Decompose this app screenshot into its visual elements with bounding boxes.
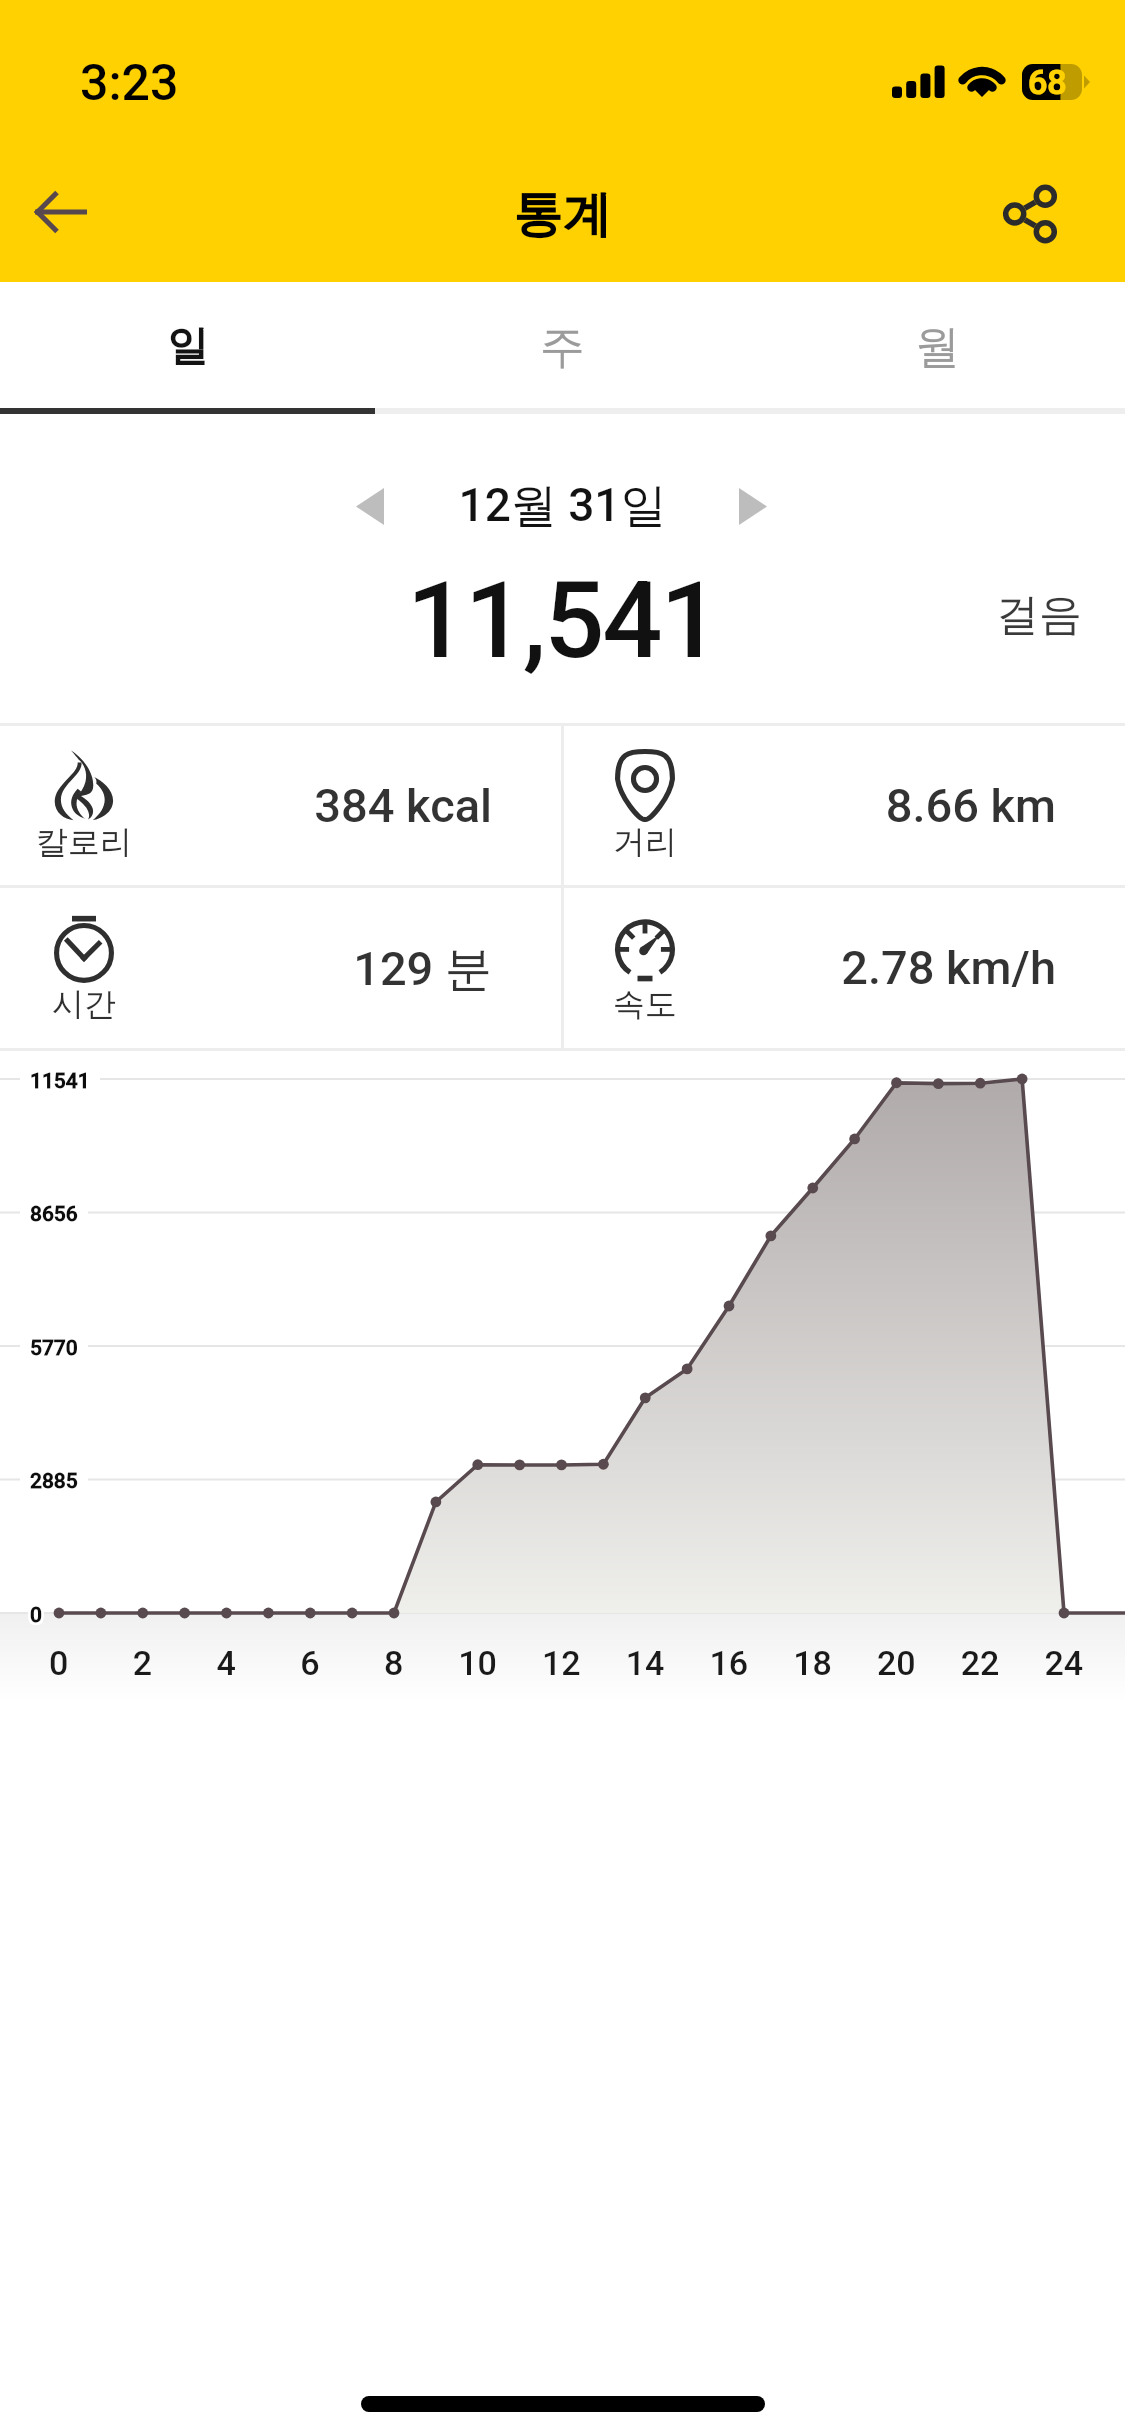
staticText: 3:23 — [80, 54, 179, 113]
button[interactable]: 칼로리 — [0, 723, 561, 886]
button[interactable]: 일 — [0, 282, 375, 408]
button[interactable]: 거리 — [561, 723, 1125, 886]
staticText: 2.78 km/h — [561, 940, 1056, 995]
button[interactable]: Previous day — [335, 471, 405, 541]
staticText: 12월 31일 — [0, 477, 1125, 535]
button[interactable]: 속도 — [561, 885, 1125, 1048]
staticText: 8.66 km — [561, 778, 1056, 833]
button[interactable]: 시간 — [0, 885, 561, 1048]
staticText: 일 — [167, 321, 208, 373]
staticText: 주 — [540, 319, 585, 376]
button[interactable]: 월 — [750, 282, 1125, 408]
button[interactable]: Back — [16, 167, 106, 257]
staticText: 11,541 — [0, 559, 1125, 683]
staticText: 384 kcal — [0, 778, 492, 833]
staticText: 칼로리 — [24, 822, 144, 862]
staticText: 129 분 — [0, 940, 492, 999]
staticText: 통계 — [0, 184, 1125, 246]
button[interactable]: Share — [985, 169, 1075, 259]
button[interactable]: 주 — [375, 282, 750, 408]
staticText: 시간 — [24, 984, 144, 1024]
staticText: 걸음 — [996, 588, 1082, 642]
staticText: 월 — [915, 319, 960, 376]
staticText: 속도 — [585, 984, 705, 1024]
button[interactable]: Next day — [718, 471, 788, 541]
staticText: 거리 — [585, 822, 705, 862]
